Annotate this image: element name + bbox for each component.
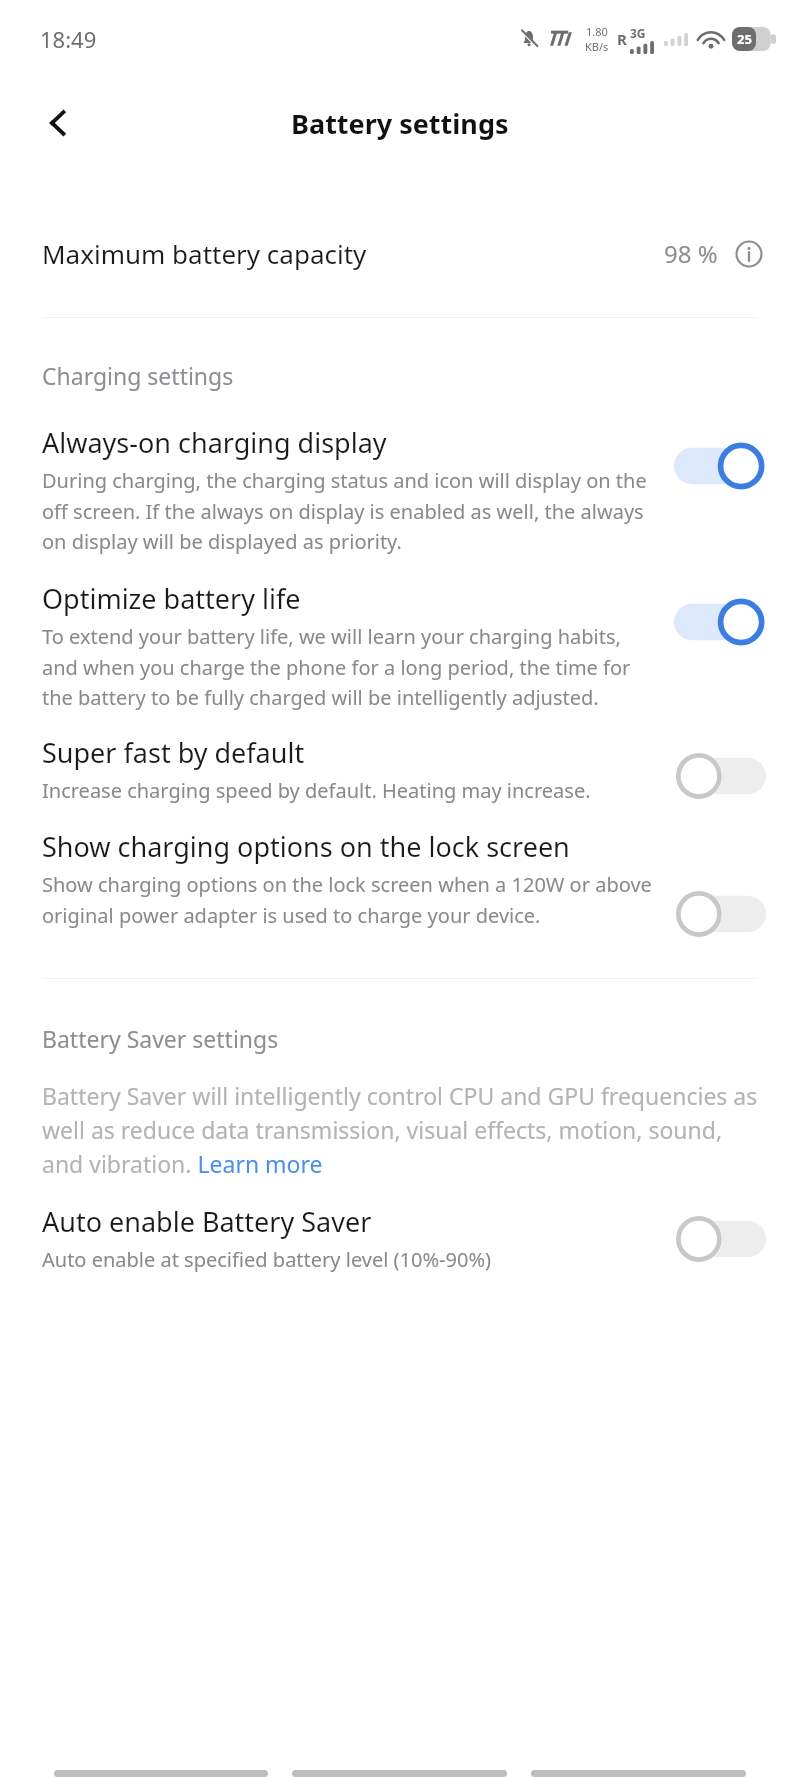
staticText: Battery settings bbox=[291, 105, 509, 142]
staticText: 3G bbox=[630, 25, 646, 41]
staticText: Show charging options on the lock screen bbox=[42, 828, 570, 865]
staticText: Charging settings bbox=[42, 360, 234, 391]
staticText: 25 bbox=[737, 30, 752, 48]
staticText: KB/s bbox=[585, 39, 609, 54]
button[interactable]: Recents bbox=[54, 1770, 268, 1777]
staticText: R bbox=[617, 29, 627, 49]
button[interactable]: Optimize battery life bbox=[0, 580, 800, 710]
button[interactable]: Off bbox=[674, 1213, 766, 1265]
staticText: 1.80 bbox=[586, 24, 608, 39]
staticText: 98 % bbox=[664, 237, 718, 270]
button[interactable]: Auto enable Battery Saver bbox=[0, 1203, 800, 1273]
staticText: Optimize battery life bbox=[42, 580, 301, 617]
staticText: Battery Saver will intelligently control… bbox=[42, 1080, 766, 1179]
button[interactable]: Maximum battery capacity bbox=[0, 230, 800, 277]
button[interactable]: Info about maximum battery capacity bbox=[732, 237, 766, 271]
staticText: 18:49 bbox=[40, 24, 97, 54]
button[interactable]: On bbox=[674, 440, 766, 492]
button[interactable]: Off bbox=[674, 888, 766, 940]
button[interactable]: Super fast by default bbox=[0, 734, 800, 804]
staticText: To extend your battery life, we will lea… bbox=[42, 623, 656, 710]
staticText: Increase charging speed by default. Heat… bbox=[42, 777, 591, 804]
button[interactable]: Home bbox=[292, 1770, 507, 1777]
button[interactable]: Back bbox=[30, 95, 86, 151]
button[interactable]: Always-on charging display bbox=[0, 424, 800, 554]
staticText: Battery Saver settings bbox=[42, 1023, 279, 1054]
staticText: Show charging options on the lock screen… bbox=[42, 871, 656, 928]
staticText: Always-on charging display bbox=[42, 424, 387, 461]
staticText: Auto enable Battery Saver bbox=[42, 1203, 372, 1240]
staticText: Super fast by default bbox=[42, 734, 305, 771]
button[interactable]: Back bbox=[531, 1770, 746, 1777]
staticText: During charging, the charging status and… bbox=[42, 467, 656, 554]
staticText: Auto enable at specified battery level (… bbox=[42, 1246, 492, 1273]
button[interactable]: On bbox=[674, 596, 766, 648]
button[interactable]: Off bbox=[674, 750, 766, 802]
staticText: Maximum battery capacity bbox=[42, 236, 664, 271]
button[interactable]: Show charging options on the lock screen bbox=[0, 828, 800, 940]
